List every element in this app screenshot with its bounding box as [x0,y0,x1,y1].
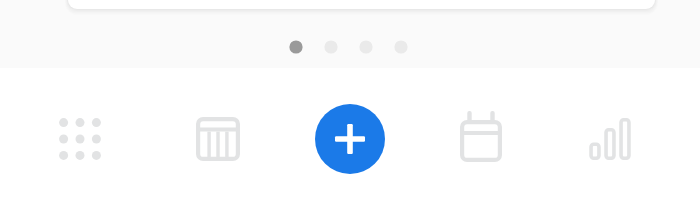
button[interactable]: Apps [48,107,112,171]
button[interactable]: Sheets [186,107,250,171]
button[interactable]: Calendar [449,107,513,171]
button[interactable]: Create [315,104,385,174]
button[interactable]: Stats [578,107,642,171]
